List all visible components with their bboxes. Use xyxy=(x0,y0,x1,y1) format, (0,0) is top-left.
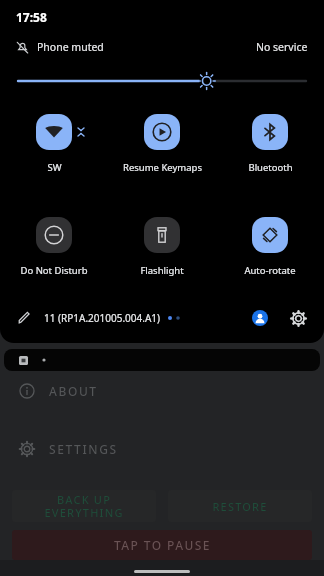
staticText: BACK UP EVERYTHING xyxy=(44,492,124,520)
staticText: SW xyxy=(47,161,62,174)
staticText: TAP TO PAUSE xyxy=(114,537,211,553)
button[interactable]: SW xyxy=(0,112,108,174)
button[interactable]: Settings xyxy=(286,306,310,330)
button[interactable]: Brightness xyxy=(18,72,306,90)
button[interactable]: Edit tiles xyxy=(14,308,34,328)
staticText: 17:58 xyxy=(16,9,47,25)
button[interactable]: User account xyxy=(248,306,272,330)
button[interactable]: Resume Keymaps xyxy=(108,112,216,174)
button[interactable]: ABOUT xyxy=(0,376,324,406)
staticText: 11 (RP1A.201005.004.A1) xyxy=(44,311,161,325)
staticText: SETTINGS xyxy=(49,441,118,457)
staticText: ABOUT xyxy=(49,383,98,399)
button[interactable]: BACK UP EVERYTHING xyxy=(12,490,156,522)
staticText: Phone muted xyxy=(37,40,104,54)
button[interactable]: TAP TO PAUSE xyxy=(12,530,312,560)
staticText: Auto-rotate xyxy=(244,264,296,277)
staticText: Bluetooth xyxy=(248,161,293,174)
button[interactable]: SETTINGS xyxy=(0,434,324,464)
button[interactable]: Bluetooth xyxy=(216,112,324,174)
staticText: Flashlight xyxy=(140,264,184,277)
button[interactable]: Flashlight xyxy=(108,215,216,277)
staticText: Resume Keymaps xyxy=(123,161,202,174)
button[interactable] xyxy=(4,349,320,371)
button[interactable]: Do Not Disturb xyxy=(0,215,108,277)
button[interactable]: Auto-rotate xyxy=(216,215,324,277)
staticText: No service xyxy=(256,40,308,54)
button[interactable]: RESTORE xyxy=(168,490,312,522)
staticText: RESTORE xyxy=(212,499,268,514)
staticText: Do Not Disturb xyxy=(20,264,88,277)
